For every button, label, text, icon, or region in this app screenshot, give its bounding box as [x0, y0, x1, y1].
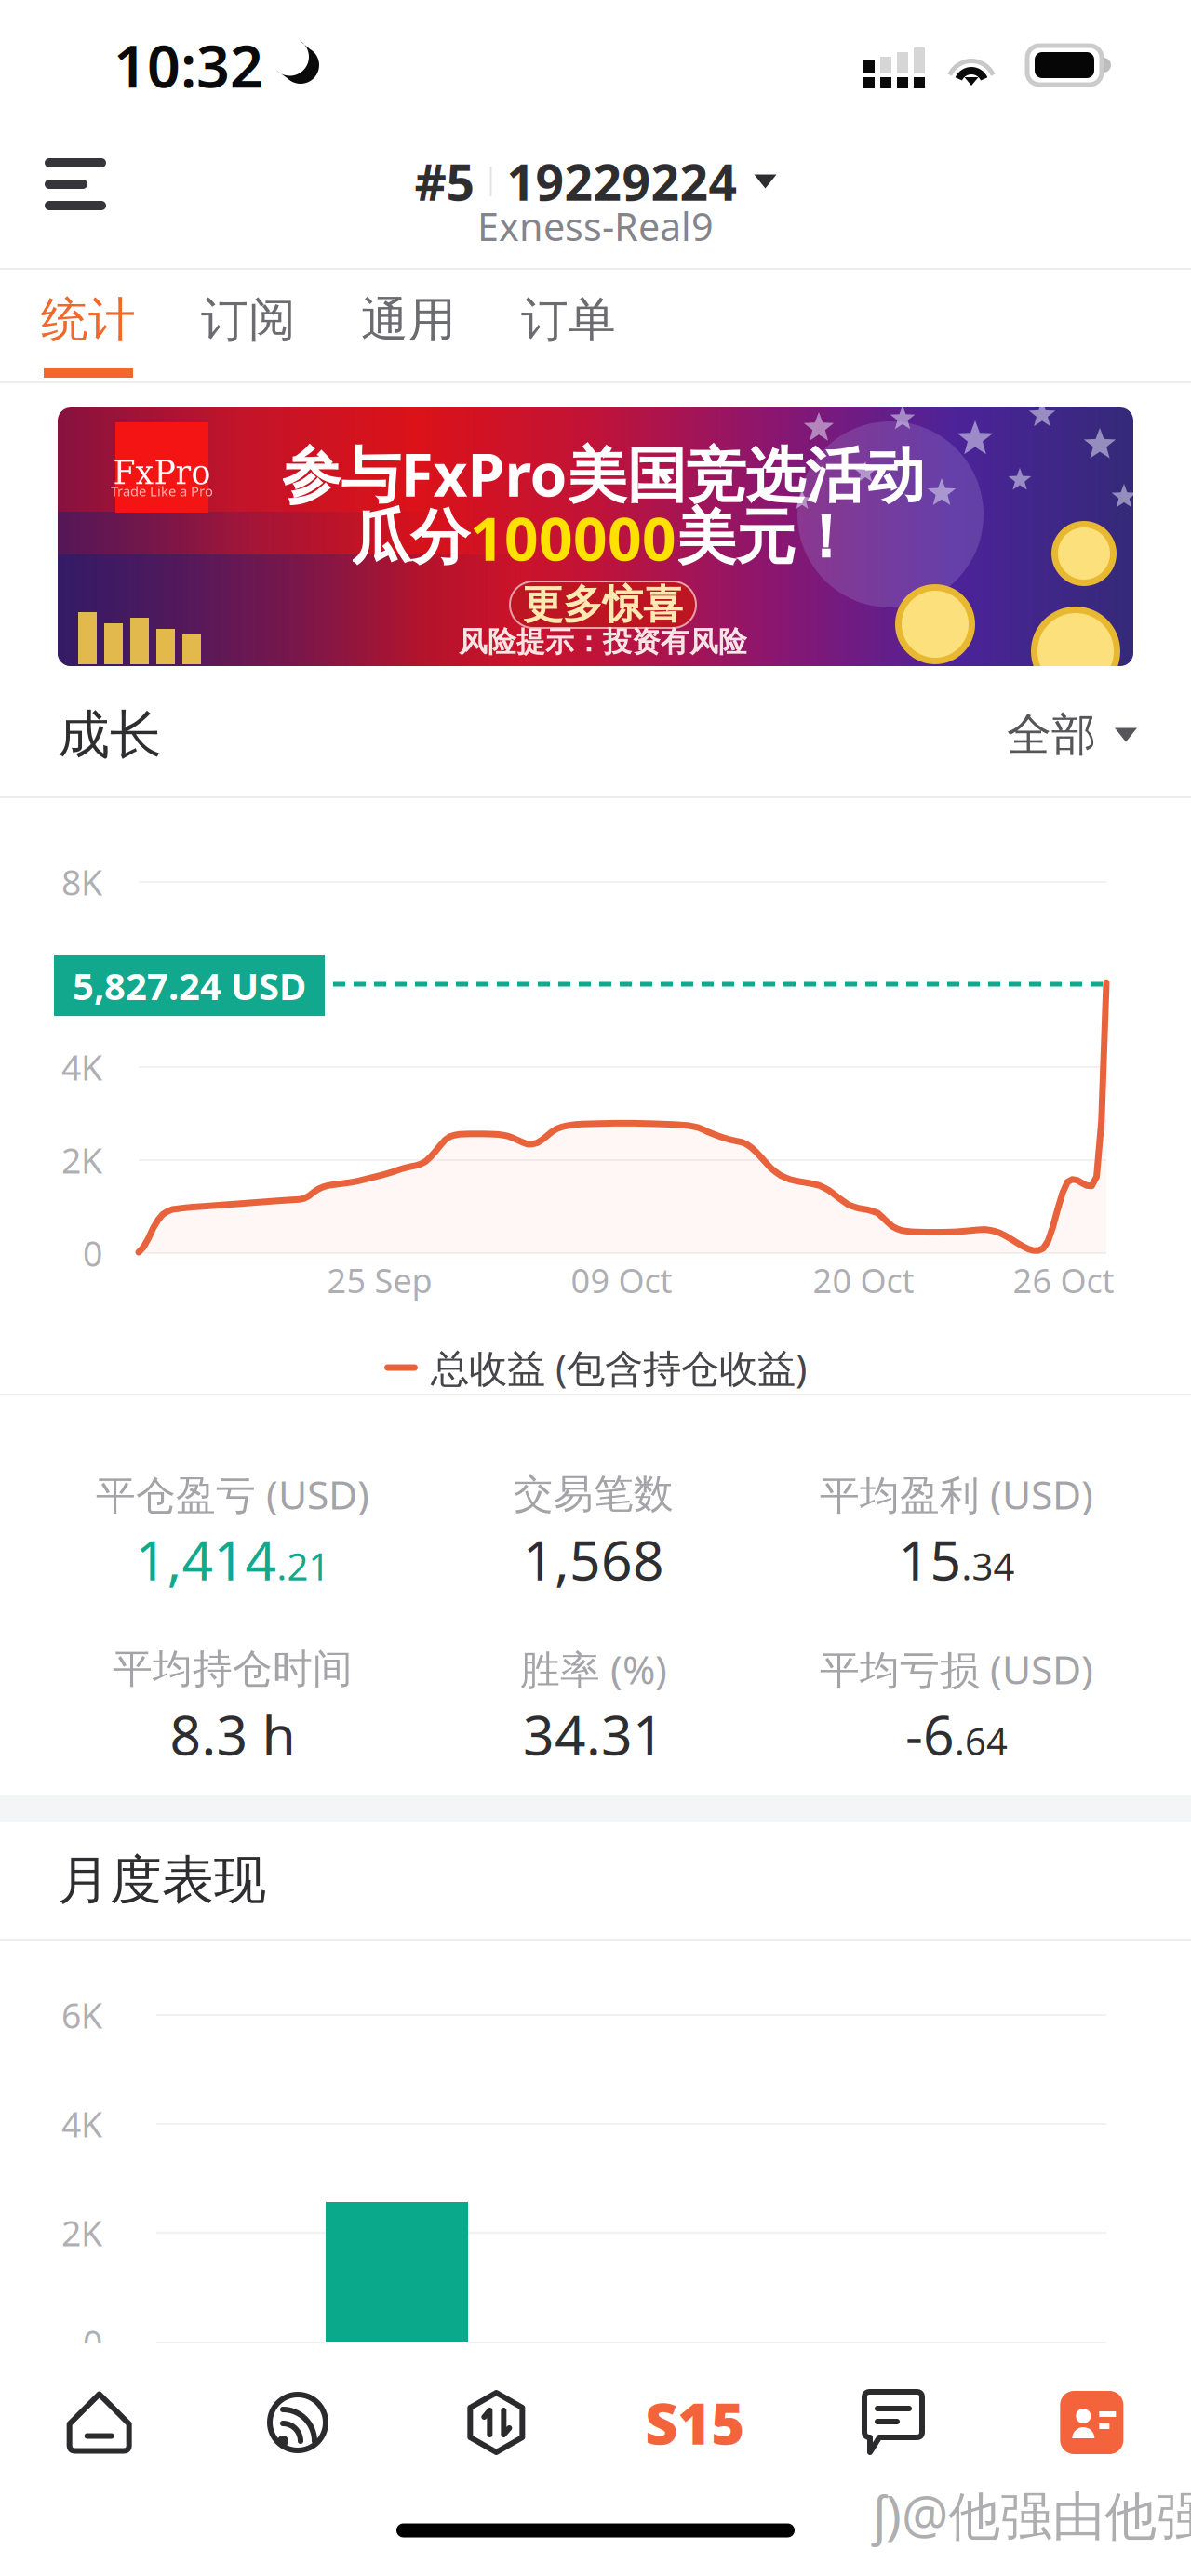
- staticText: 8K: [61, 859, 102, 905]
- staticText: 1,414: [135, 1523, 277, 1595]
- staticText: 交易笔数: [514, 1470, 674, 1518]
- button[interactable]: 订阅: [197, 268, 357, 381]
- staticText: 34.31: [523, 1698, 664, 1770]
- button[interactable]: Signals: [198, 2343, 397, 2502]
- staticText: 订阅: [201, 291, 296, 349]
- staticText: #5: [415, 148, 475, 214]
- staticText: 1,568: [523, 1523, 664, 1595]
- staticText: 平均持仓时间: [113, 1645, 353, 1693]
- staticText: 0: [83, 2319, 102, 2366]
- staticText: -6: [905, 1698, 955, 1770]
- staticText: 平均亏损 (USD): [820, 1643, 1093, 1695]
- staticText: .34: [962, 1541, 1015, 1591]
- staticText: 19229224: [507, 148, 737, 214]
- staticText: 成长: [58, 703, 162, 767]
- staticText: 美元！: [676, 501, 855, 574]
- button[interactable]: 统计: [37, 268, 197, 381]
- button[interactable]: 全部: [1007, 681, 1137, 788]
- staticText: 5,827.24 USD: [73, 961, 306, 1010]
- staticText: 全部: [1007, 707, 1096, 762]
- staticText: 20 Oct: [813, 1258, 914, 1302]
- staticText: FxPro: [113, 454, 211, 492]
- button[interactable]: S15: [595, 2343, 794, 2502]
- staticText: 6K: [61, 1992, 102, 2038]
- staticText: 通用: [361, 291, 456, 349]
- staticText: 胜率 (%): [520, 1643, 667, 1695]
- button[interactable]: 订单: [517, 268, 677, 381]
- staticText: 25 Sep: [327, 1258, 432, 1302]
- button[interactable]: Profile: [993, 2343, 1191, 2502]
- button[interactable]: #5: [0, 130, 1191, 268]
- staticText: 2K: [61, 2210, 102, 2256]
- staticText: 15: [898, 1523, 962, 1595]
- staticText: .21: [277, 1541, 330, 1591]
- staticText: 参与FxPro美国竞选活动: [281, 434, 924, 513]
- button[interactable]: 通用: [357, 268, 517, 381]
- staticText: 10:32: [114, 26, 263, 104]
- staticText: 100000: [470, 498, 676, 577]
- button[interactable]: Home: [0, 2343, 198, 2502]
- staticText: 4K: [61, 1044, 102, 1090]
- staticText: 风险提示：投资有风险: [459, 624, 747, 659]
- staticText: .64: [955, 1716, 1008, 1766]
- staticText: S15: [645, 2385, 745, 2460]
- staticText: 总收益 (包含持仓收益): [431, 1342, 807, 1393]
- staticText: 26 Oct: [1013, 1258, 1114, 1302]
- staticText: 更多惊喜: [523, 580, 683, 629]
- staticText: 4K: [61, 2101, 102, 2147]
- button[interactable]: Menu: [0, 130, 147, 238]
- staticText: 月度表现: [58, 1848, 266, 1912]
- button[interactable]: FxPro: [58, 407, 1133, 666]
- staticText: 订单: [521, 291, 616, 349]
- staticText: ʃ)@他强由他强: [873, 2479, 1191, 2549]
- staticText: 0: [83, 1230, 102, 1276]
- staticText: 8.3 h: [170, 1698, 295, 1770]
- staticText: Exness-Real9: [477, 201, 714, 252]
- staticText: 09 Oct: [571, 1258, 672, 1302]
- staticText: 统计: [41, 291, 136, 349]
- staticText: 平均盈利 (USD): [820, 1468, 1093, 1520]
- button[interactable]: Trade: [397, 2343, 595, 2502]
- staticText: 平仓盈亏 (USD): [96, 1468, 369, 1520]
- staticText: Trade Like a Pro: [111, 482, 213, 500]
- staticText: 瓜分: [351, 501, 470, 574]
- staticText: 2K: [61, 1137, 102, 1183]
- button[interactable]: Chat: [794, 2343, 992, 2502]
